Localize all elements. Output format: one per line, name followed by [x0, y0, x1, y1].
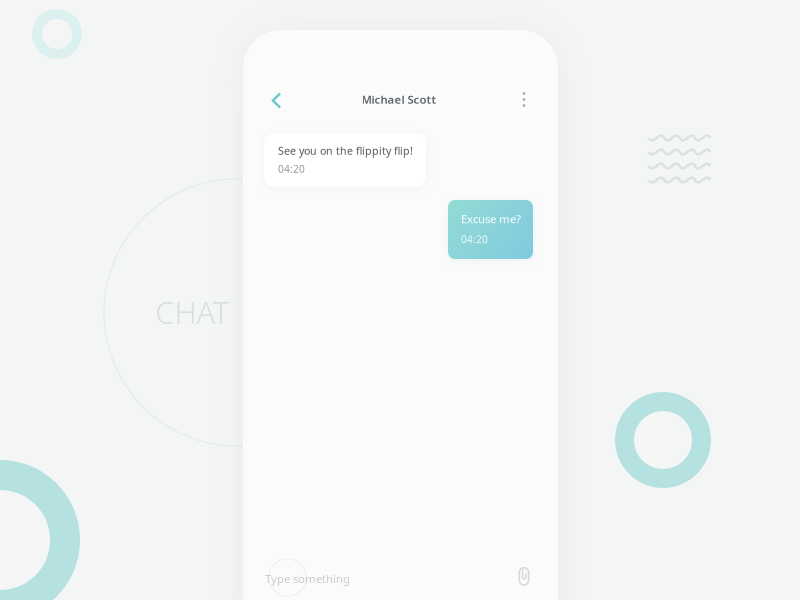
- staticText: 04:20: [278, 162, 305, 176]
- staticText: Michael Scott: [361, 92, 436, 107]
- staticText: CHAT: [155, 291, 229, 333]
- button[interactable]: Type something: [265, 561, 465, 595]
- staticText: See you on the flippity flip!: [278, 143, 413, 158]
- button[interactable]: More options: [509, 84, 539, 114]
- staticText: 04:20: [461, 232, 488, 246]
- staticText: Type something: [265, 571, 350, 586]
- staticText: Excuse me?: [461, 211, 521, 226]
- button[interactable]: Attach file: [511, 564, 537, 590]
- button[interactable]: Back: [259, 83, 293, 117]
